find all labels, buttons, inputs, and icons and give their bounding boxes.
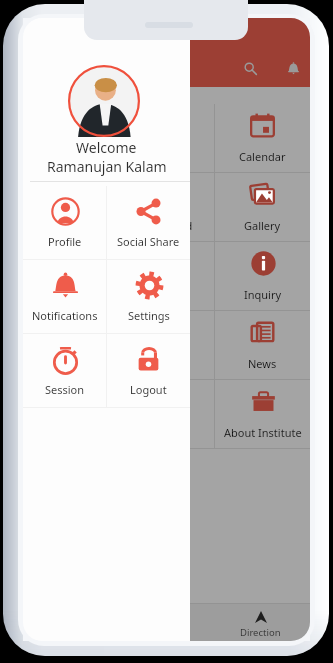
staticText: Gallery bbox=[244, 218, 281, 233]
button[interactable]: Gallery bbox=[215, 173, 310, 241]
button[interactable]: Profile bbox=[23, 186, 106, 259]
staticText: News bbox=[248, 356, 277, 371]
staticText: Logout bbox=[130, 382, 167, 397]
button[interactable]: Search bbox=[234, 52, 266, 84]
staticText: Session bbox=[45, 382, 85, 397]
button[interactable]: News bbox=[215, 311, 310, 379]
button[interactable]: Inquiry bbox=[215, 242, 310, 310]
button[interactable]: Social Share bbox=[107, 186, 190, 259]
button[interactable]: Download bbox=[119, 173, 214, 241]
staticText: Notifications bbox=[32, 308, 98, 323]
button[interactable]: Direction bbox=[212, 603, 308, 641]
staticText: Profile bbox=[48, 234, 82, 249]
staticText: Welcome bbox=[76, 138, 137, 157]
staticText: About Institute bbox=[224, 425, 302, 440]
button[interactable]: Notifications bbox=[277, 52, 309, 84]
button[interactable]: Notifications bbox=[23, 260, 106, 333]
button[interactable]: Logout bbox=[107, 334, 190, 407]
staticText: Direction bbox=[240, 626, 281, 639]
staticText: Download bbox=[140, 218, 193, 233]
button[interactable]: Holiday bbox=[119, 311, 214, 379]
button[interactable]: Session bbox=[23, 334, 106, 407]
button[interactable]: Contact bbox=[119, 380, 214, 448]
button[interactable] bbox=[23, 380, 118, 448]
staticText: Library bbox=[148, 287, 185, 302]
staticText: Inquiry bbox=[244, 287, 282, 302]
button[interactable]: Library bbox=[119, 242, 214, 310]
staticText: Settings bbox=[128, 308, 170, 323]
button[interactable] bbox=[23, 242, 118, 310]
button[interactable]: Settings bbox=[107, 260, 190, 333]
staticText: Ramanujan Kalam bbox=[47, 157, 167, 176]
button[interactable] bbox=[23, 173, 118, 241]
button[interactable]: Calendar bbox=[215, 104, 310, 172]
button[interactable] bbox=[23, 104, 118, 172]
button[interactable]: Faculty bbox=[119, 104, 214, 172]
staticText: Social Share bbox=[117, 234, 180, 249]
staticText: Holiday bbox=[147, 356, 187, 371]
button[interactable]: About Institute bbox=[215, 380, 310, 448]
staticText: Calendar bbox=[239, 149, 286, 164]
button[interactable] bbox=[23, 311, 118, 379]
